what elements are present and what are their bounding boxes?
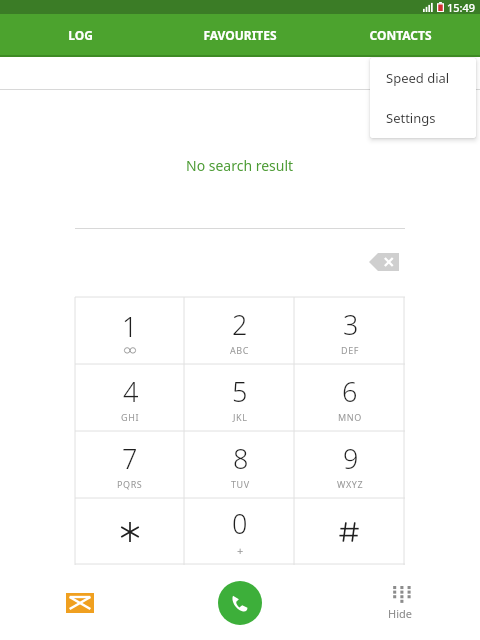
staticText: + [237,543,244,558]
button[interactable]: Backspace [364,249,404,275]
button[interactable] [75,498,185,565]
button[interactable]: 1 [75,297,185,364]
button[interactable]: 0 [185,498,295,565]
button[interactable]: Send message [0,565,160,640]
staticText: JKL [233,411,248,423]
button[interactable]: 2 [185,297,295,364]
staticText: PQRS [117,478,143,490]
staticText: 15:49 [447,0,476,14]
staticText: Settings [386,109,436,127]
staticText: 5 [232,373,248,410]
button[interactable]: 5 [185,364,295,431]
staticText: 3 [343,306,359,343]
button[interactable]: CONTACTS [320,14,480,55]
staticText: Speed dial [386,69,450,87]
staticText: 7 [122,440,138,477]
staticText: DEF [341,344,360,356]
staticText: WXYZ [337,478,364,490]
button[interactable]: FAVOURITES [160,14,320,55]
button[interactable]: 7 [75,431,185,498]
staticText: ABC [230,344,250,356]
button[interactable]: 9 [295,431,405,498]
staticText: 0 [232,505,248,542]
button[interactable] [295,498,405,565]
staticText: LOG [68,27,93,43]
button[interactable]: Call [160,565,320,640]
staticText: Hide [388,606,412,621]
button[interactable]: Speed dial [370,58,476,98]
button[interactable]: Hide keypad [320,565,480,640]
button[interactable]: 8 [185,431,295,498]
staticText: FAVOURITES [203,27,277,43]
staticText: 4 [123,373,139,410]
staticText: No search result [186,156,294,175]
staticText: 9 [343,440,359,477]
button[interactable]: 6 [295,364,405,431]
staticText: 8 [233,440,249,477]
staticText: 1 [122,308,138,345]
staticText: MNO [338,411,362,423]
button[interactable]: 3 [295,297,405,364]
staticText: 2 [232,306,248,343]
staticText: TUV [231,478,250,490]
button[interactable]: LOG [0,14,160,55]
staticText: 6 [342,373,358,410]
staticText: GHI [121,411,140,423]
button[interactable]: Settings [370,98,476,138]
staticText: CONTACTS [369,27,432,43]
button[interactable]: 4 [75,364,185,431]
